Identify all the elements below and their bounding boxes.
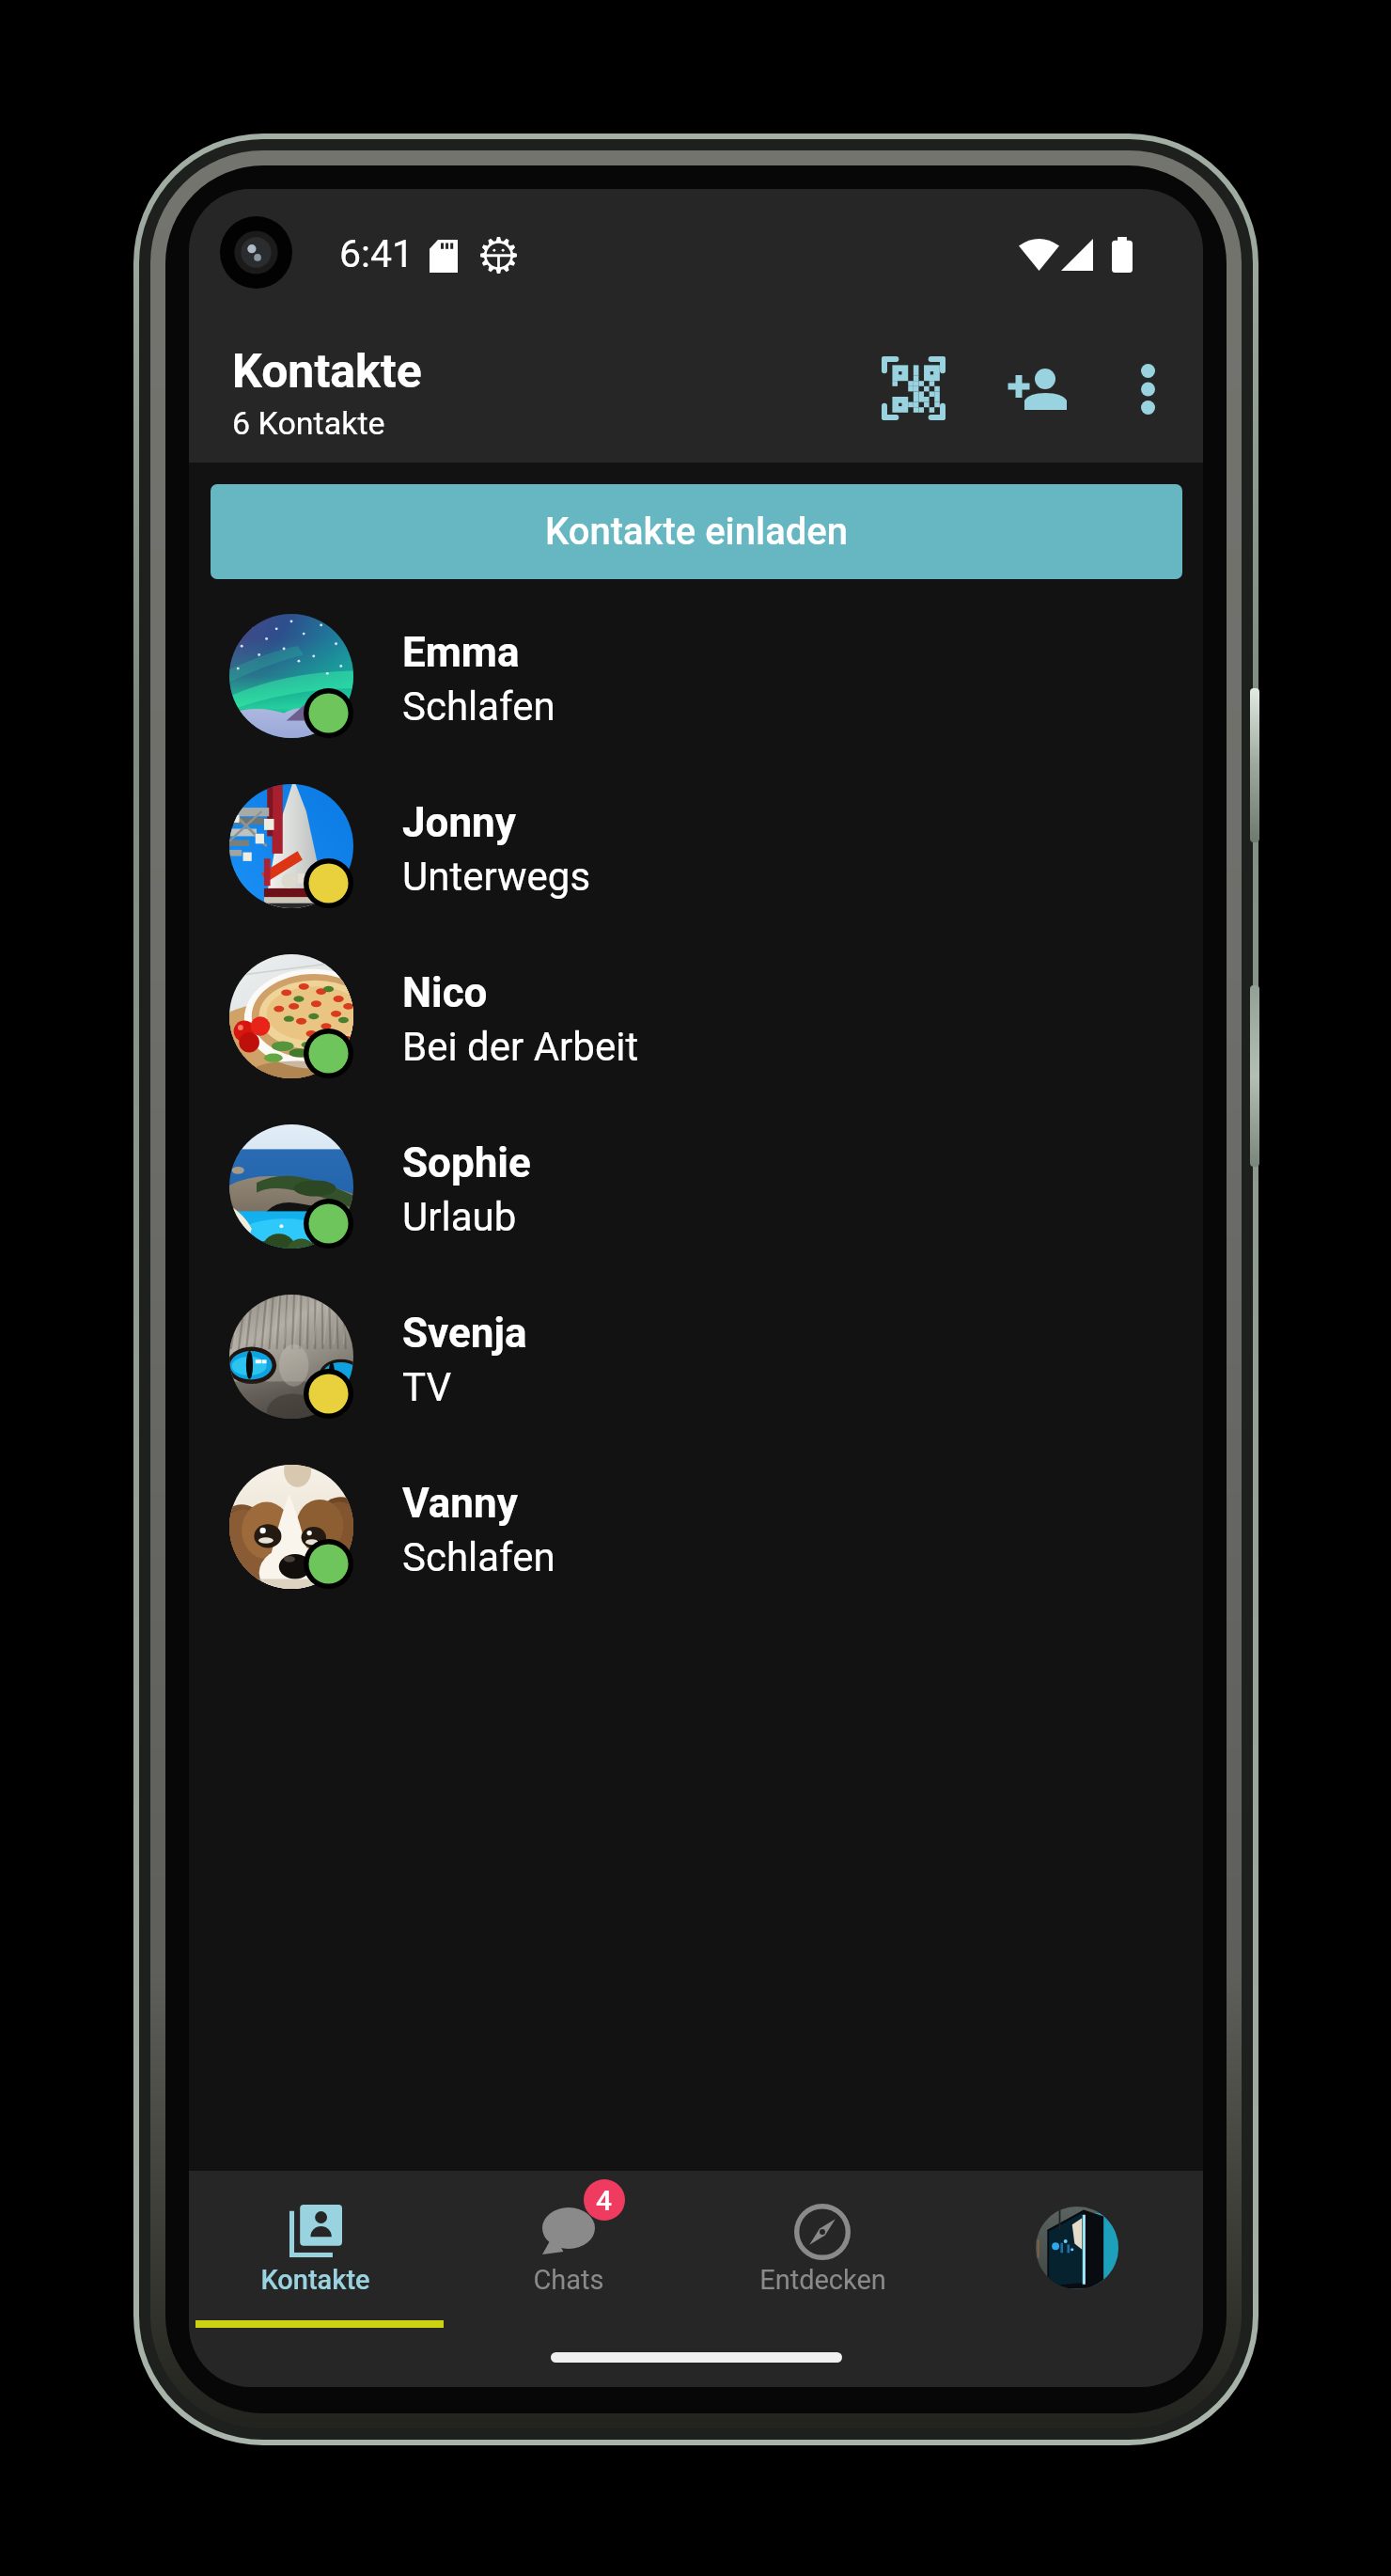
button[interactable]: Kontakte einladen — [211, 484, 1182, 579]
staticText: Svenja — [402, 1309, 527, 1358]
button[interactable]: Svenja — [189, 1272, 1203, 1442]
staticText: Kontakte — [260, 2264, 370, 2296]
button[interactable]: Profile — [949, 2171, 1203, 2387]
staticText: Schlafen — [402, 683, 555, 730]
button[interactable]: Nico — [189, 932, 1203, 1102]
staticText: Entdecken — [759, 2264, 886, 2296]
staticText: 6:41 — [339, 231, 414, 276]
staticText: Kontakte einladen — [545, 510, 849, 554]
staticText: Jonny — [402, 798, 516, 847]
staticText: Bei der Arbeit — [402, 1024, 639, 1070]
staticText: Kontakte — [232, 344, 422, 400]
staticText: Unterwegs — [402, 854, 591, 900]
staticText: 4 — [596, 2184, 613, 2217]
button[interactable]: Kontakte — [189, 2171, 442, 2387]
button[interactable]: 4 — [442, 2171, 695, 2387]
staticText: Nico — [402, 968, 488, 1017]
button[interactable]: Add contact — [972, 323, 1103, 455]
staticText: TV — [402, 1364, 452, 1410]
staticText: Emma — [402, 628, 520, 677]
button[interactable]: Entdecken — [695, 2171, 949, 2387]
staticText: 6 Kontakte — [232, 404, 385, 442]
button[interactable]: Vanny — [189, 1442, 1203, 1612]
staticText: Urlaub — [402, 1194, 517, 1240]
staticText: Schlafen — [402, 1534, 555, 1580]
staticText: Sophie — [402, 1139, 531, 1187]
button[interactable]: Sophie — [189, 1102, 1203, 1272]
staticText: Vanny — [402, 1479, 518, 1528]
button[interactable]: Jonny — [189, 762, 1203, 932]
button[interactable]: Emma — [189, 591, 1203, 762]
button[interactable]: Scan QR code — [847, 322, 980, 454]
button[interactable]: More options — [1082, 323, 1203, 455]
staticText: Chats — [533, 2264, 604, 2296]
